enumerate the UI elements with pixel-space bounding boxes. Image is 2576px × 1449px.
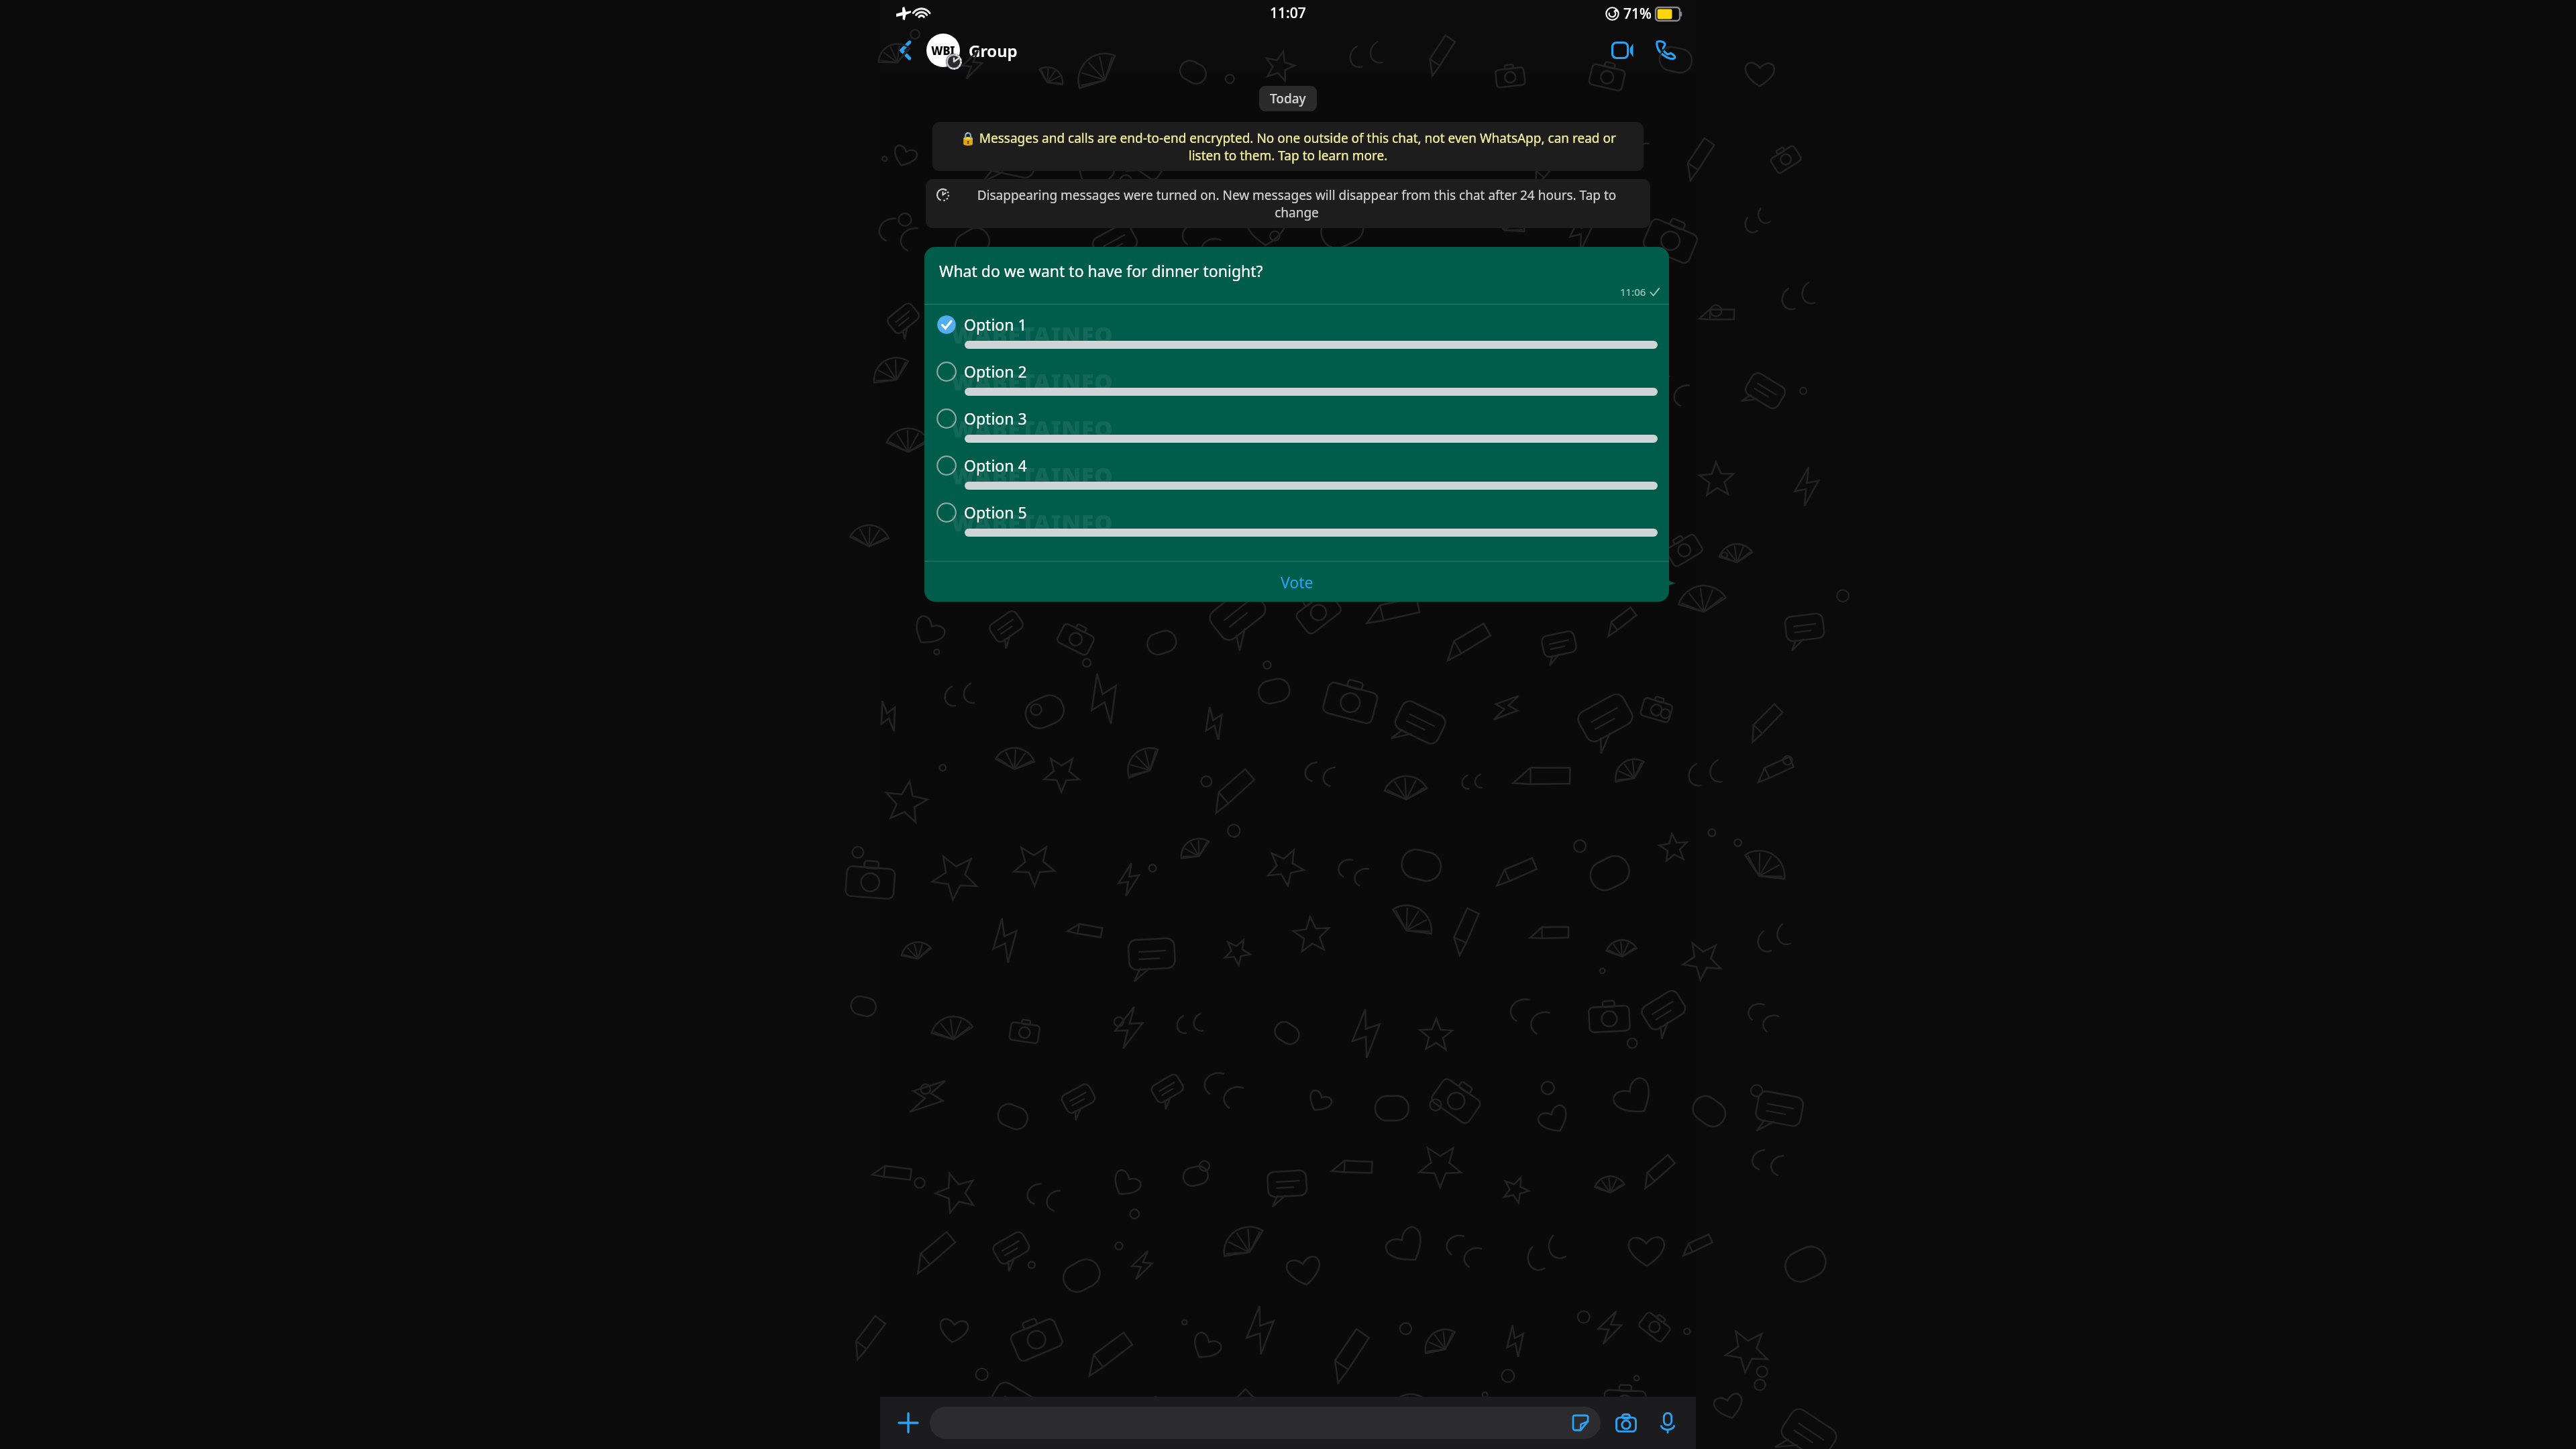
button[interactable]: Attach	[891, 1405, 926, 1440]
button[interactable]: WABETAINFO	[924, 455, 1669, 502]
button[interactable]: Voice message	[1650, 1405, 1685, 1440]
staticText: WABETAINFO	[951, 366, 1114, 397]
button[interactable]: WABETAINFO	[924, 314, 1669, 361]
button[interactable]: Disappearing messages were turned on. Ne…	[926, 179, 1650, 228]
staticText: WBI	[931, 43, 955, 58]
staticText: 11:07	[1270, 3, 1306, 23]
button[interactable]: Stickers	[930, 1407, 1601, 1439]
button[interactable]: Today	[1259, 86, 1317, 111]
staticText: Option 3	[964, 408, 1027, 429]
button[interactable]: Voice call	[1649, 34, 1682, 67]
button[interactable]: 🔒 Messages and calls are end-to-end encr…	[932, 122, 1644, 171]
button[interactable]: Back	[891, 35, 922, 66]
staticText: Option 4	[964, 455, 1027, 476]
button[interactable]: Camera	[1609, 1405, 1644, 1440]
staticText: Option 5	[964, 502, 1027, 523]
button[interactable]: WABETAINFO	[924, 502, 1669, 549]
staticText: 11:06	[1620, 285, 1646, 299]
staticText: WABETAINFO	[951, 460, 1114, 491]
staticText: 🔒 Messages and calls are end-to-end encr…	[943, 129, 1633, 164]
button[interactable]: WABETAINFO	[924, 408, 1669, 455]
staticText: Option 1	[964, 314, 1027, 335]
staticText: Today	[1270, 90, 1306, 107]
staticText: What do we want to have for dinner tonig…	[939, 260, 1263, 281]
button[interactable]: Stickers	[1567, 1409, 1594, 1436]
button[interactable]: Video call	[1606, 34, 1640, 67]
staticText: WABETAINFO	[951, 507, 1114, 538]
staticText: Option 2	[964, 361, 1027, 382]
staticText: 71%	[1623, 4, 1652, 23]
staticText: Group	[969, 40, 1018, 62]
button[interactable]: WBI	[926, 33, 1018, 68]
button[interactable]: Vote	[924, 561, 1669, 602]
staticText: Vote	[1281, 572, 1313, 592]
staticText: WABETAINFO	[951, 413, 1114, 444]
staticText: Disappearing messages were turned on. Ne…	[954, 186, 1640, 221]
staticText: WABETAINFO	[951, 319, 1114, 350]
button[interactable]: WABETAINFO	[924, 361, 1669, 408]
